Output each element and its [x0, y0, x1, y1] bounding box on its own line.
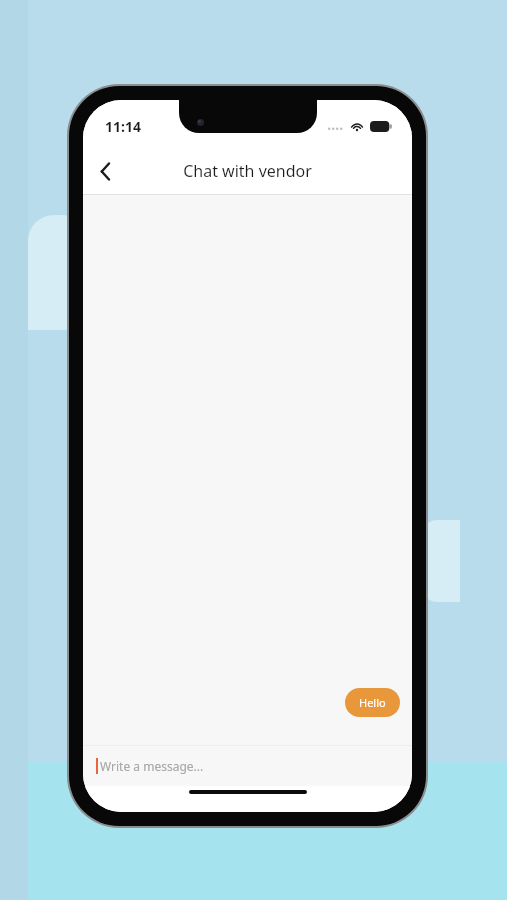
- button[interactable]: Write a message...: [83, 746, 412, 786]
- button[interactable]: Back: [83, 149, 127, 193]
- button[interactable]: Hello: [345, 688, 400, 717]
- staticText: 11:14: [105, 117, 141, 136]
- staticText: Write a message...: [100, 758, 204, 774]
- staticText: Chat with vendor: [183, 160, 312, 182]
- staticText: Hello: [359, 695, 386, 710]
